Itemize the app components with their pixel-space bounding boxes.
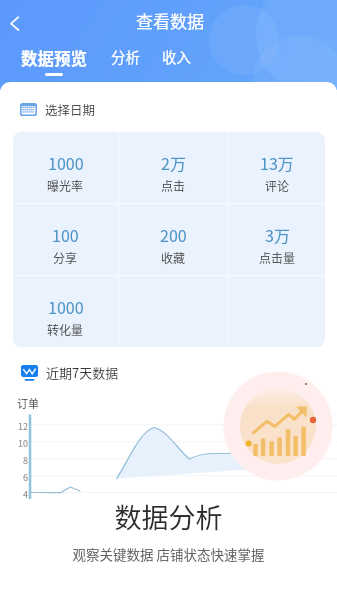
staticText: 3万 xyxy=(265,223,290,246)
staticText: 数据预览 xyxy=(21,46,87,70)
staticText: 8 xyxy=(23,454,28,467)
button[interactable]: Back xyxy=(0,6,30,36)
staticText: 12 xyxy=(18,420,28,433)
button[interactable]: 2万 xyxy=(119,132,228,203)
button[interactable]: 3万 xyxy=(229,204,325,275)
staticText: 订单 xyxy=(17,395,39,411)
button[interactable]: 1000 xyxy=(13,276,118,347)
staticText: 查看数据 xyxy=(136,8,204,33)
button[interactable]: 数据预览 xyxy=(21,46,87,76)
button[interactable]: 收入 xyxy=(162,46,191,67)
staticText: 1000 xyxy=(48,295,84,318)
staticText: 100 xyxy=(52,223,79,246)
staticText: 10 xyxy=(18,437,28,450)
staticText: 6 xyxy=(23,471,28,484)
staticText: 收藏 xyxy=(161,249,186,266)
staticText: 收入 xyxy=(162,46,191,67)
staticText: 13万 xyxy=(260,151,294,174)
staticText: 转化量 xyxy=(47,321,84,338)
staticText: 1000 xyxy=(48,151,84,174)
staticText: 4 xyxy=(23,488,28,501)
button[interactable]: 200 xyxy=(119,204,228,275)
staticText: 分析 xyxy=(111,46,140,67)
staticText: 200 xyxy=(160,223,187,246)
staticText: 分享 xyxy=(53,249,78,266)
button[interactable]: 选择日期 xyxy=(20,100,96,118)
button[interactable]: 13万 xyxy=(229,132,325,203)
staticText: 选择日期 xyxy=(45,100,96,118)
staticText: 2万 xyxy=(161,151,186,174)
staticText: 曝光率 xyxy=(47,177,84,194)
button[interactable]: 分析 xyxy=(111,46,140,67)
staticText: 点击量 xyxy=(259,249,296,266)
button[interactable]: 100 xyxy=(13,204,118,275)
staticText: 近期7天数据 xyxy=(46,363,119,382)
staticText: 观察关键数据 店铺状态快速掌握 xyxy=(0,544,337,564)
staticText: 点击 xyxy=(161,177,186,194)
staticText: 评论 xyxy=(265,177,290,194)
staticText: 数据分析 xyxy=(0,497,337,536)
button[interactable]: 1000 xyxy=(13,132,118,203)
